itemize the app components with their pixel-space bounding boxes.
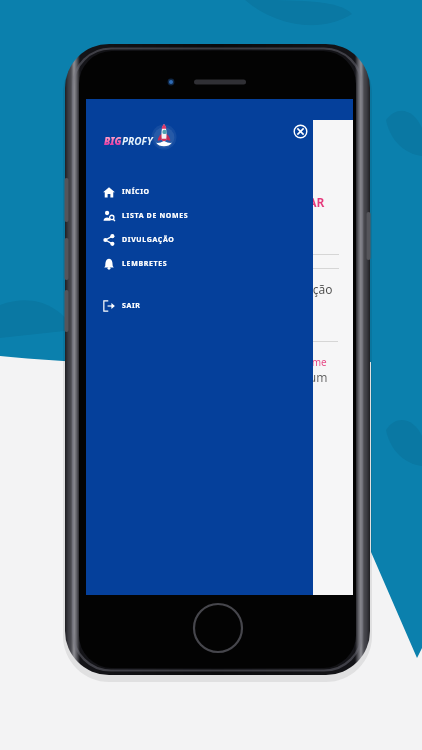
staticText: INÍCIO	[122, 187, 150, 197]
staticText: LISTA DE NOMES	[122, 211, 189, 221]
button[interactable]: LEMBRETES	[86, 252, 313, 276]
button[interactable]: LISTA DE NOMES	[86, 204, 313, 228]
staticText: SAIR	[122, 301, 141, 311]
staticText: CADASTRAR	[254, 194, 325, 210]
staticText: DIVULGAÇÃO	[122, 235, 175, 245]
button[interactable]: DIVULGAÇÃO	[86, 228, 313, 252]
staticText: Nome	[298, 355, 327, 369]
staticText: Escolha um	[263, 369, 328, 385]
button[interactable]: INÍCIO	[86, 180, 313, 204]
staticText: PROFY	[122, 134, 153, 148]
button[interactable]: Close menu	[293, 124, 308, 139]
button[interactable]: BIG	[104, 122, 179, 148]
staticText: Informação	[267, 281, 333, 297]
staticText: LEMBRETES	[122, 259, 168, 269]
button[interactable]: SAIR	[86, 294, 313, 318]
staticText: BIG	[104, 134, 122, 148]
